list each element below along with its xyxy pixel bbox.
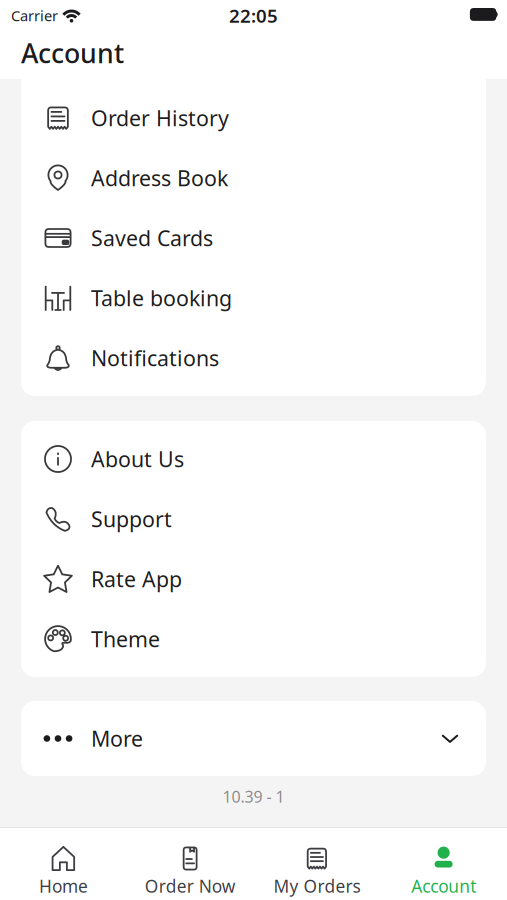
button[interactable]: Order Now (127, 828, 254, 899)
button[interactable]: More (21, 701, 486, 776)
staticText: 10.39 - 1 (222, 786, 284, 807)
staticText: Account (21, 35, 124, 71)
button[interactable]: Theme (21, 609, 486, 669)
staticText: Support (91, 505, 172, 533)
button[interactable]: Home (0, 828, 127, 899)
staticText: Notifications (91, 344, 219, 372)
button[interactable]: Table booking (21, 268, 486, 328)
staticText: Order History (91, 104, 229, 132)
staticText: Table booking (91, 284, 232, 312)
staticText: Carrier (11, 6, 58, 25)
button[interactable]: Account (380, 828, 507, 899)
button[interactable]: Saved Cards (21, 208, 486, 268)
staticText: Order Now (145, 874, 236, 897)
button[interactable]: Notifications (21, 328, 486, 388)
button[interactable]: Rate App (21, 549, 486, 609)
staticText: More (91, 724, 143, 753)
staticText: Account (411, 874, 476, 897)
staticText: About Us (91, 445, 184, 473)
button[interactable]: Address Book (21, 148, 486, 208)
button[interactable]: About Us (21, 429, 486, 489)
staticText: 22:05 (229, 3, 278, 28)
button[interactable]: Order History (21, 88, 486, 148)
staticText: Rate App (91, 565, 182, 593)
button[interactable]: Support (21, 489, 486, 549)
staticText: My Orders (273, 874, 360, 897)
staticText: Home (39, 874, 88, 897)
staticText: Address Book (91, 164, 228, 192)
button[interactable]: My Orders (253, 828, 380, 899)
staticText: Theme (91, 625, 160, 653)
staticText: Saved Cards (91, 224, 213, 252)
